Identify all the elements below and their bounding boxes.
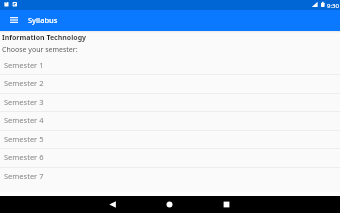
staticText: Semester 7 — [4, 171, 44, 181]
staticText: Semester 6 — [4, 152, 44, 162]
staticText: Semester 1 — [4, 60, 44, 70]
button[interactable]: Home — [161, 196, 178, 213]
staticText: 9:30 — [327, 2, 339, 10]
staticText: Semester 5 — [4, 134, 44, 144]
button[interactable]: Semester 3 — [0, 93, 340, 112]
button[interactable]: Back — [104, 196, 121, 213]
staticText: Semester 4 — [4, 115, 44, 125]
button[interactable]: Semester 7 — [0, 167, 340, 186]
button[interactable]: Open navigation menu — [0, 10, 24, 31]
button[interactable]: Semester 6 — [0, 148, 340, 167]
button[interactable]: Recent apps — [218, 196, 235, 213]
button[interactable]: Semester 2 — [0, 74, 340, 93]
staticText: Syllabus — [28, 15, 58, 25]
staticText: Information Technology — [2, 33, 87, 43]
button[interactable]: Semester 5 — [0, 130, 340, 149]
button[interactable]: Semester 1 — [0, 56, 340, 75]
staticText: Semester 2 — [4, 78, 44, 88]
staticText: Choose your semester: — [2, 45, 78, 55]
staticText: Semester 3 — [4, 97, 44, 107]
button[interactable]: Semester 4 — [0, 111, 340, 130]
